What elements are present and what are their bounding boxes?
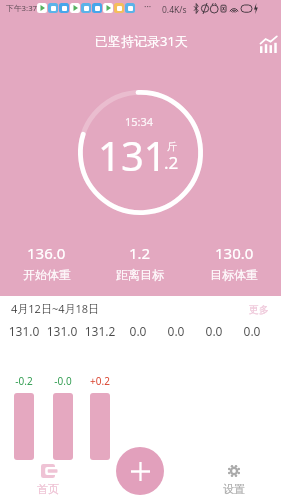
- button[interactable]: 4月12日~4月18日: [11, 301, 100, 316]
- staticText: 1.2: [129, 243, 151, 263]
- staticText: 131.0: [5, 323, 43, 339]
- staticText: 0.4K/s: [162, 4, 187, 16]
- button[interactable]: 130.0: [187, 243, 281, 282]
- button[interactable]: 1.2: [93, 243, 187, 282]
- staticText: 0.0: [157, 323, 195, 339]
- staticText: 136.0: [27, 243, 66, 263]
- staticText: 更多: [249, 303, 269, 316]
- staticText: 131.0: [43, 323, 81, 339]
- staticText: -0.2: [14, 374, 34, 388]
- staticText: 130.0: [215, 243, 254, 263]
- staticText: 首页: [37, 482, 59, 496]
- staticText: 斤: [167, 140, 177, 153]
- staticText: 距离目标: [116, 267, 164, 282]
- button[interactable]: 设置: [210, 464, 258, 496]
- button[interactable]: 136.0: [0, 243, 93, 282]
- button[interactable]: 首页: [24, 464, 72, 496]
- staticText: 设置: [223, 482, 245, 496]
- button[interactable]: 更多: [249, 303, 269, 316]
- staticText: 0.0: [119, 323, 157, 339]
- staticText: -0.0: [53, 374, 73, 388]
- staticText: +0.2: [90, 374, 110, 388]
- staticText: 131.2: [81, 323, 119, 339]
- staticText: 0.0: [195, 323, 233, 339]
- button[interactable]: Statistics: [260, 36, 277, 53]
- staticText: 15:34: [125, 114, 154, 129]
- staticText: 0.0: [233, 323, 271, 339]
- staticText: ···: [144, 0, 152, 12]
- staticText: .2: [164, 151, 179, 174]
- button[interactable]: 已坚持记录31天: [95, 32, 188, 50]
- staticText: 开始体重: [23, 267, 71, 282]
- staticText: 下午3:37: [6, 3, 38, 14]
- button[interactable]: Add record: [116, 447, 164, 495]
- staticText: 目标体重: [210, 267, 258, 282]
- staticText: 131: [98, 128, 167, 182]
